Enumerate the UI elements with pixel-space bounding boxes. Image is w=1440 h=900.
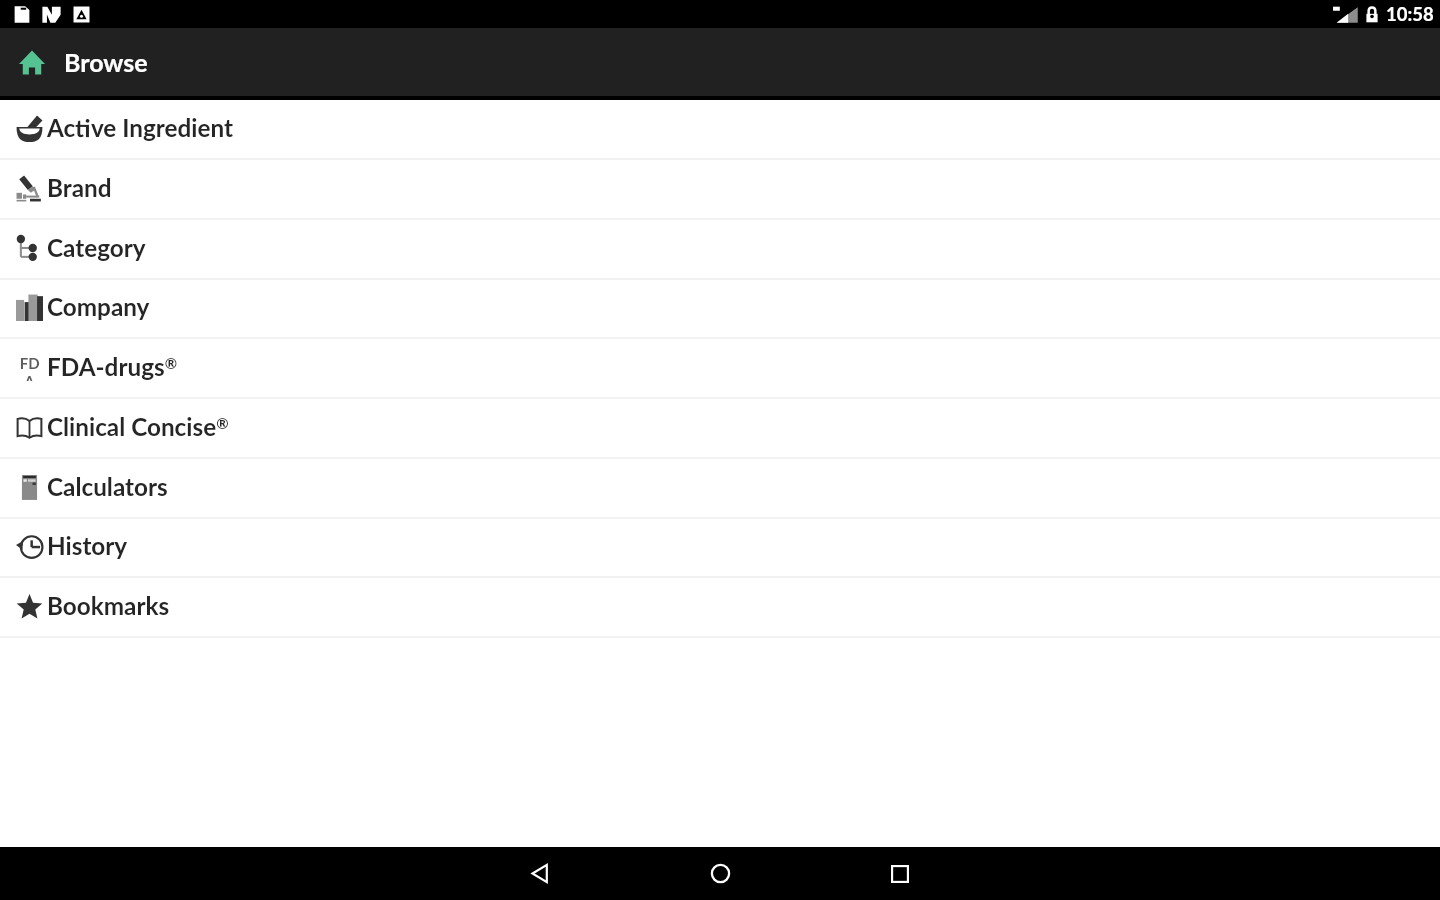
button[interactable]: Recent apps	[810, 847, 990, 900]
button[interactable]: Category	[0, 220, 1440, 280]
staticText: 10:58	[1386, 3, 1434, 25]
staticText: Browse	[64, 47, 148, 77]
button[interactable]: Home	[630, 847, 810, 900]
button[interactable]: Bookmarks	[0, 578, 1440, 638]
button[interactable]: Company	[0, 279, 1440, 339]
staticText: Brand	[47, 173, 112, 202]
button[interactable]: Active Ingredient	[0, 100, 1440, 160]
staticText: Active Ingredient	[47, 113, 233, 142]
button[interactable]: History	[0, 518, 1440, 578]
button[interactable]: Clinical Concise®	[0, 399, 1440, 459]
staticText: FDA-drugs®	[47, 352, 178, 381]
button[interactable]: FDA	[0, 339, 1440, 399]
staticText: Company	[47, 292, 150, 321]
staticText: Category	[47, 233, 146, 262]
staticText: Clinical Concise®	[47, 412, 229, 441]
button[interactable]: Brand	[0, 160, 1440, 220]
button[interactable]: Home	[0, 28, 64, 96]
staticText: FDA	[16, 354, 43, 381]
button[interactable]: Calculators	[0, 459, 1440, 519]
staticText: History	[47, 531, 128, 560]
staticText: Bookmarks	[47, 591, 170, 620]
button[interactable]: Back	[450, 847, 630, 900]
staticText: Calculators	[47, 472, 168, 501]
